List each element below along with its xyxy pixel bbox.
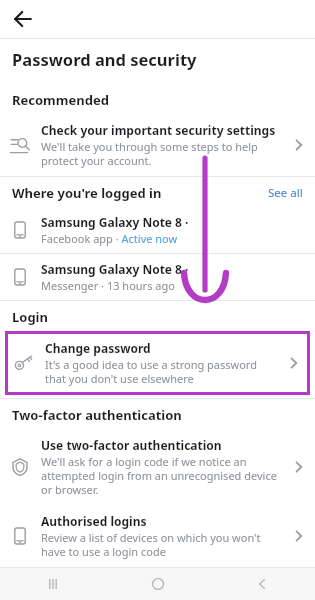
- staticText: Login: [12, 308, 48, 326]
- staticText: Authorised logins: [41, 513, 147, 529]
- button[interactable]: Recents: [0, 568, 105, 600]
- staticText: It's a good idea to use a strong passwor…: [45, 357, 278, 386]
- staticText: See all: [268, 185, 303, 201]
- button[interactable]: Home: [105, 568, 210, 600]
- staticText: Password and security: [12, 48, 197, 70]
- staticText: Change password: [45, 340, 151, 356]
- staticText: Where you're logged in: [12, 184, 162, 202]
- button[interactable]: Samsung Galaxy Note 8 ·: [0, 207, 315, 253]
- staticText: Samsung Galaxy Note 8 ·: [41, 261, 189, 277]
- staticText: Review a list of devices on which you wo…: [41, 530, 283, 559]
- staticText: Check your important security settings: [41, 122, 276, 138]
- staticText: We'll ask for a login code if we notice …: [41, 454, 283, 497]
- button[interactable]: Samsung Galaxy Note 8 ·: [0, 254, 315, 300]
- staticText: Recommended: [12, 91, 109, 109]
- button[interactable]: Use two-factor authentication: [0, 429, 315, 505]
- button[interactable]: Change password: [8, 334, 307, 392]
- staticText: Use two-factor authentication: [41, 437, 222, 453]
- staticText: We'll take you through some steps to hel…: [41, 139, 283, 168]
- staticText: Two-factor authentication: [12, 406, 182, 424]
- staticText: Facebook app · Active now: [41, 231, 178, 246]
- button[interactable]: Authorised logins: [0, 505, 315, 567]
- button[interactable]: Check your important security settings: [0, 114, 315, 176]
- button[interactable]: See all: [268, 185, 303, 201]
- button[interactable]: Back: [8, 4, 38, 34]
- staticText: Messenger · 13 hours ago: [41, 278, 175, 293]
- button[interactable]: Back: [210, 568, 315, 600]
- staticText: Samsung Galaxy Note 8 ·: [41, 214, 189, 230]
